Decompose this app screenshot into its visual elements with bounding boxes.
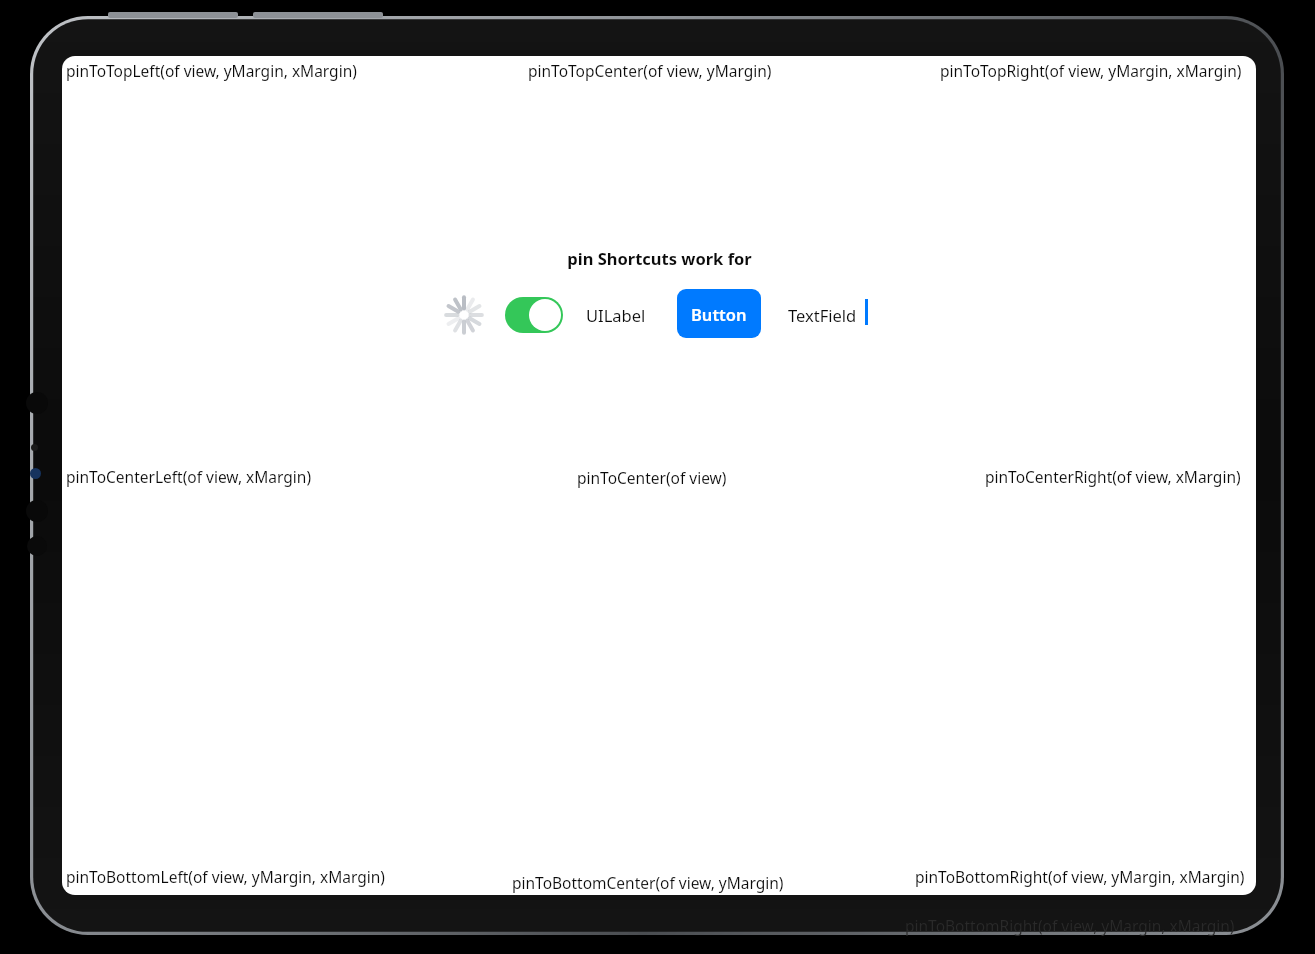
staticText: pin Shortcuts work for bbox=[567, 247, 752, 269]
staticText: pinToBottomCenter(of view, yMargin) bbox=[512, 872, 784, 893]
staticText: pinToCenter(of view) bbox=[577, 467, 727, 488]
staticText: pinToBottomRight(of view, yMargin, xMarg… bbox=[915, 866, 1245, 887]
staticText: pinToTopRight(of view, yMargin, xMargin) bbox=[940, 60, 1242, 81]
button[interactable]: Toggle switch, on bbox=[505, 297, 563, 333]
staticText: TextField bbox=[788, 304, 857, 326]
staticText: UILabel bbox=[586, 304, 646, 326]
staticText: pinToBottomLeft(of view, yMargin, xMargi… bbox=[66, 866, 385, 887]
staticText: pinToTopLeft(of view, yMargin, xMargin) bbox=[66, 60, 357, 81]
button[interactable]: Button bbox=[677, 289, 761, 338]
staticText: pinToBottomRight(of view, yMargin, xMarg… bbox=[905, 915, 1235, 936]
staticText: Button bbox=[691, 303, 747, 325]
staticText: pinToCenterLeft(of view, xMargin) bbox=[66, 466, 312, 487]
staticText: pinToCenterRight(of view, xMargin) bbox=[985, 466, 1241, 487]
staticText: pinToTopCenter(of view, yMargin) bbox=[528, 60, 772, 81]
button[interactable]: TextField bbox=[788, 299, 878, 331]
button[interactable]: Loading indicator bbox=[442, 293, 486, 337]
